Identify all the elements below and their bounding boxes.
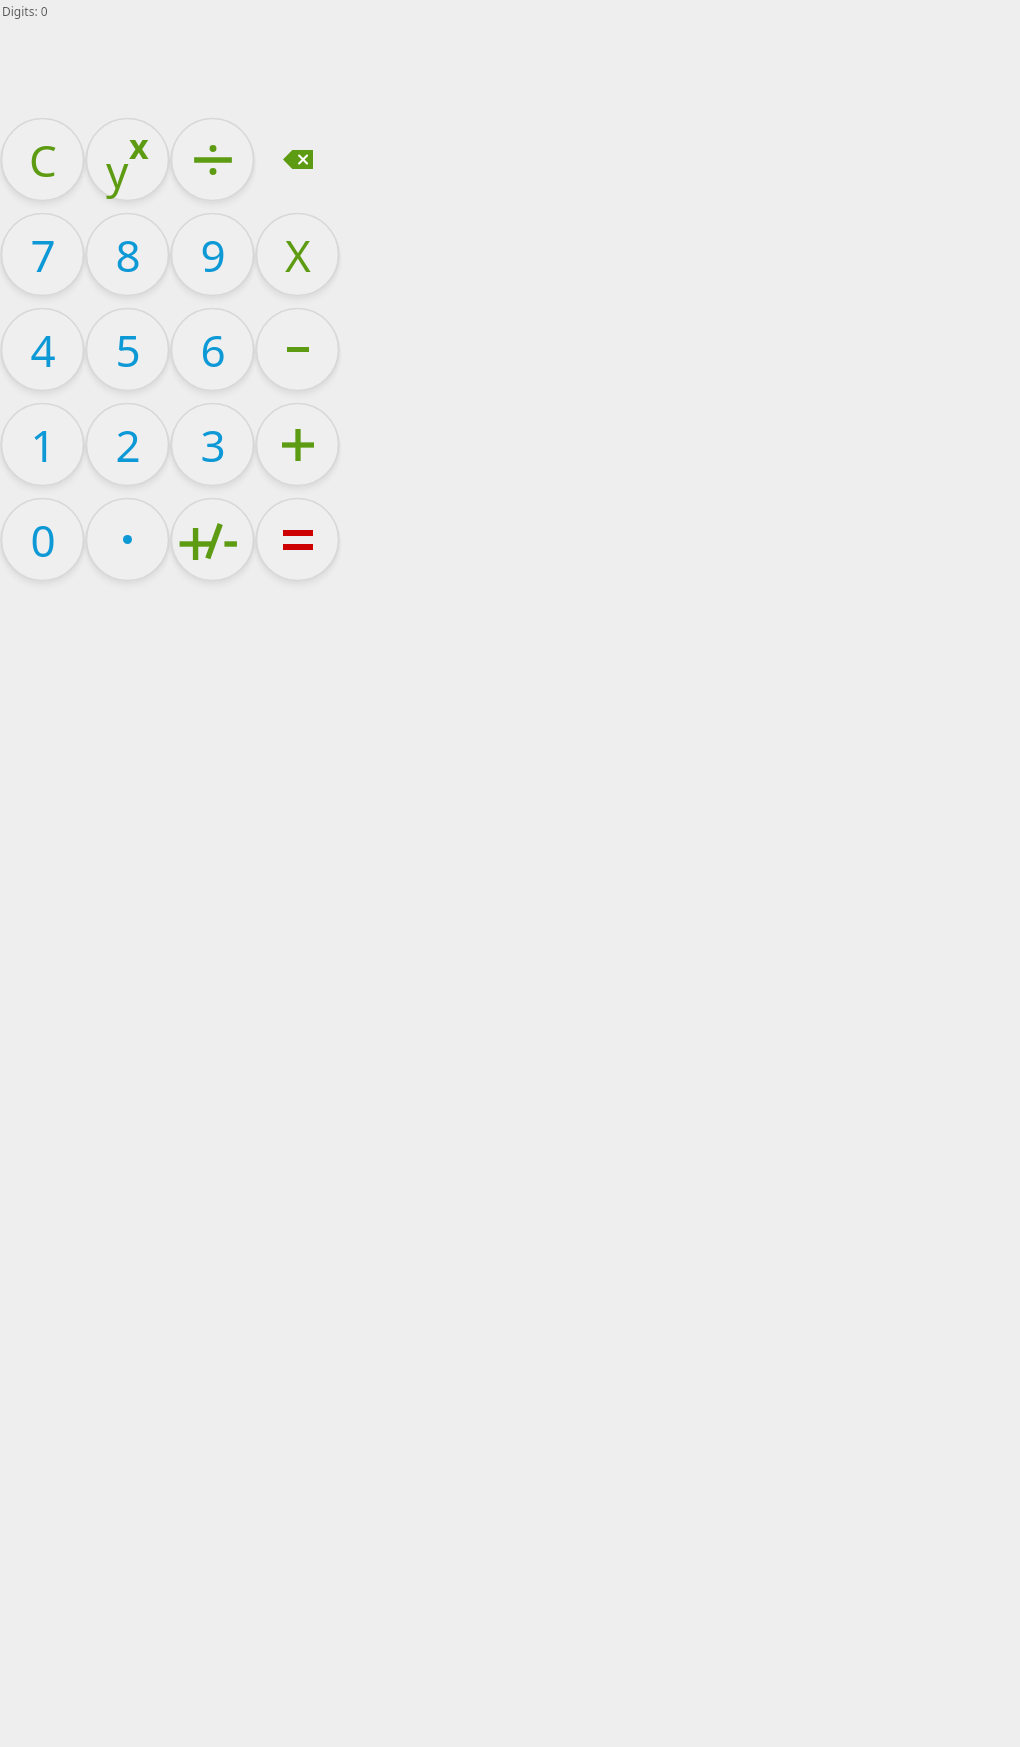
button[interactable]: 8 [85, 207, 170, 302]
staticText: 2 [115, 415, 141, 475]
button[interactable]: 3 [170, 397, 255, 492]
button[interactable]: Decimal point [85, 492, 170, 587]
staticText: 1 [30, 415, 56, 475]
button[interactable]: Backspace [255, 112, 340, 207]
staticText: 5 [115, 320, 141, 380]
button[interactable]: Plus or minus [170, 492, 255, 587]
staticText: 0 [30, 510, 56, 570]
button[interactable]: y to the power of x [85, 112, 170, 207]
button[interactable]: 9 [170, 207, 255, 302]
button[interactable]: Plus [255, 397, 340, 492]
button[interactable]: 6 [170, 302, 255, 397]
staticText: 3 [200, 415, 226, 475]
button[interactable]: 4 [0, 302, 85, 397]
staticText: 9 [200, 225, 226, 285]
button[interactable]: Minus [255, 302, 340, 397]
staticText: C [29, 130, 57, 190]
button[interactable]: C [0, 112, 85, 207]
staticText: y [106, 141, 129, 201]
staticText: Digits: 0 [2, 3, 48, 19]
staticText: 7 [30, 225, 56, 285]
staticText: x [129, 123, 149, 169]
button[interactable]: 0 [0, 492, 85, 587]
button[interactable]: 5 [85, 302, 170, 397]
staticText: 6 [200, 320, 226, 380]
staticText: X [285, 225, 311, 285]
staticText: 4 [30, 320, 56, 380]
button[interactable]: Equals [255, 492, 340, 587]
staticText: 8 [115, 225, 141, 285]
button[interactable]: X [255, 207, 340, 302]
button[interactable]: 1 [0, 397, 85, 492]
button[interactable]: 2 [85, 397, 170, 492]
button[interactable]: 7 [0, 207, 85, 302]
button[interactable]: Divide [170, 112, 255, 207]
